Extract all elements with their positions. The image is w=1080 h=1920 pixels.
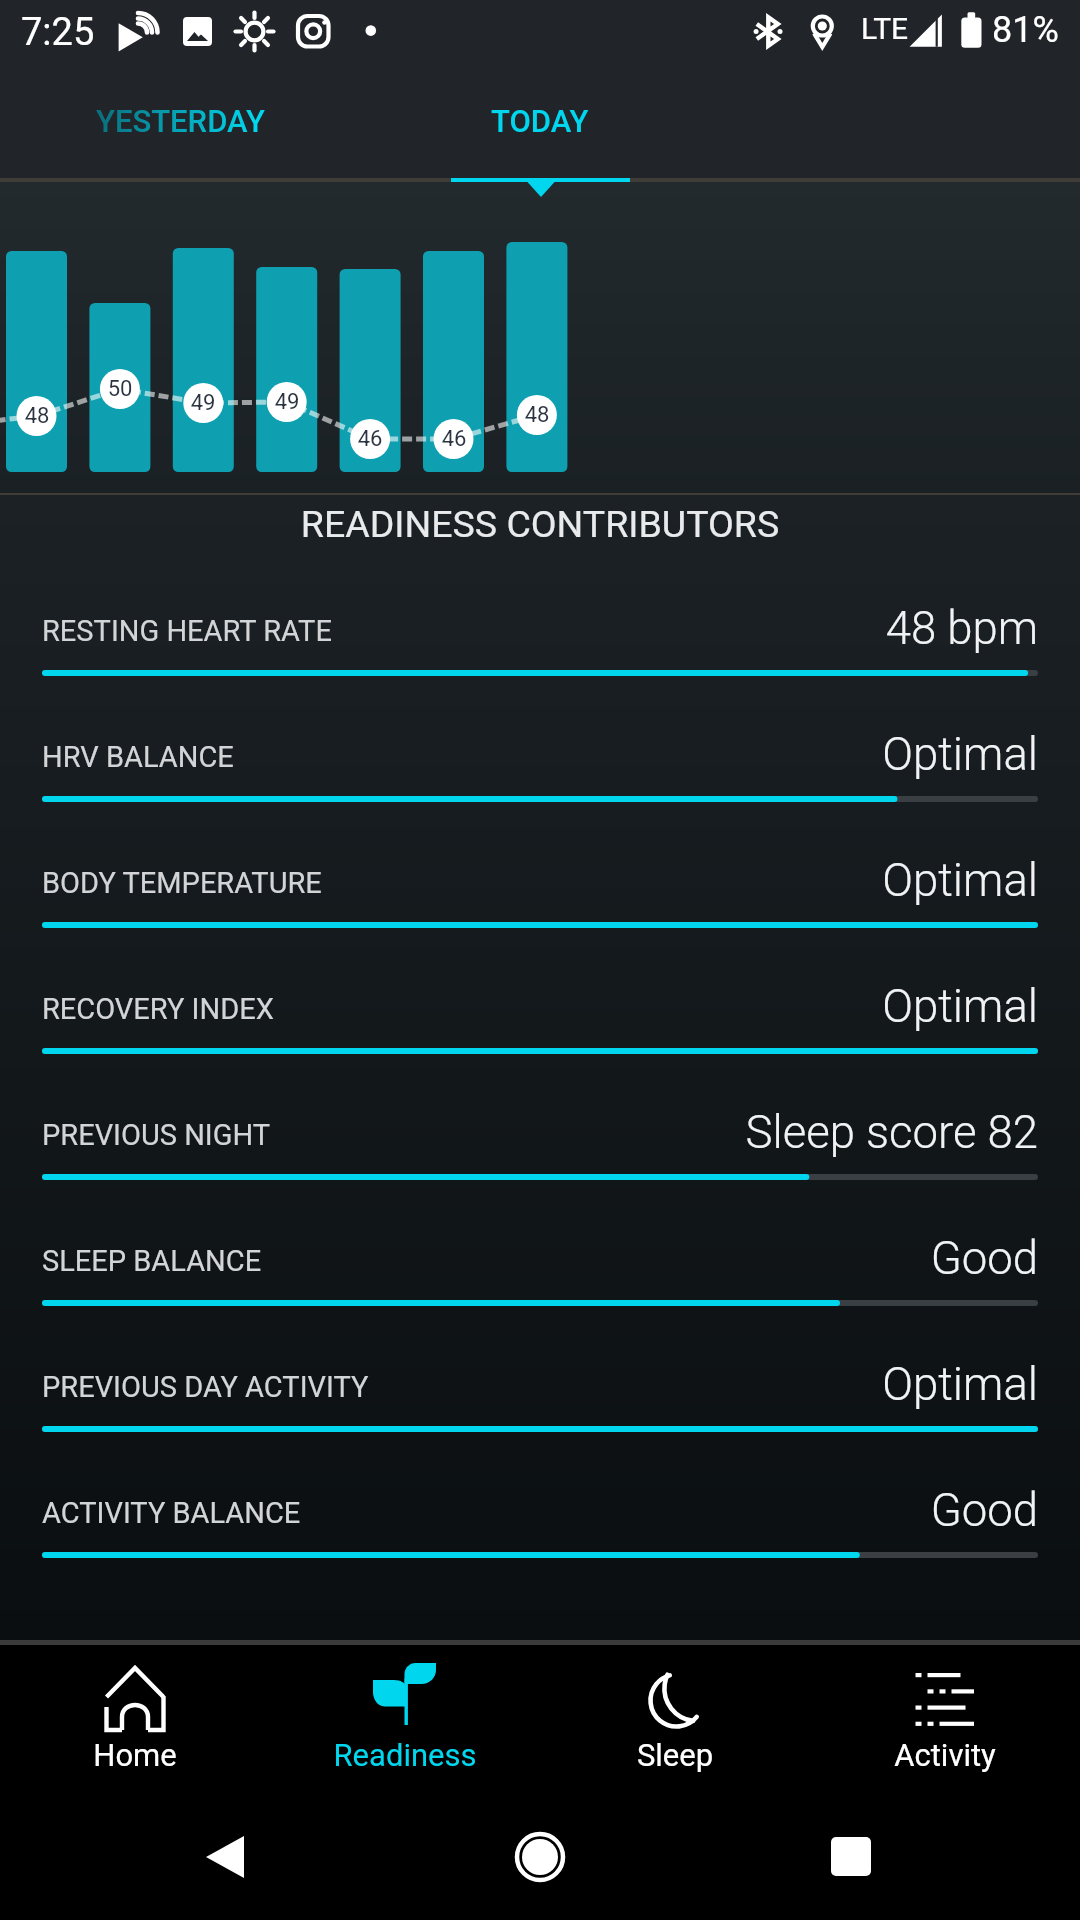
staticText: 7:25 [21, 10, 95, 55]
staticText: Readiness [270, 1737, 540, 1773]
button[interactable]: YESTERDAY [0, 72, 360, 178]
button[interactable]: PREVIOUS DAY ACTIVITY [0, 1348, 1080, 1474]
button[interactable]: RECOVERY INDEX [0, 970, 1080, 1096]
staticText: Optimal [0, 728, 1038, 781]
button[interactable]: Back [160, 1790, 290, 1920]
button[interactable]: Home [0, 1645, 270, 1790]
staticText: RECOVERY INDEX [42, 992, 274, 1026]
button[interactable]: Readiness [270, 1645, 540, 1790]
staticText: READINESS CONTRIBUTORS [0, 502, 1080, 546]
staticText: Good [0, 1232, 1038, 1285]
staticText: Optimal [0, 980, 1038, 1033]
staticText: 50 [100, 376, 140, 402]
staticText: HRV BALANCE [42, 740, 234, 774]
staticText: 46 [434, 426, 474, 452]
button[interactable]: HRV BALANCE [0, 718, 1080, 844]
staticText: 81% [992, 9, 1059, 51]
button[interactable]: Activity [810, 1645, 1080, 1790]
staticText: PREVIOUS DAY ACTIVITY [42, 1370, 369, 1404]
staticText: 49 [183, 390, 223, 416]
staticText: Activity [810, 1737, 1080, 1773]
staticText: YESTERDAY [96, 103, 265, 139]
button[interactable]: BODY TEMPERATURE [0, 844, 1080, 970]
staticText: Optimal [0, 854, 1038, 907]
staticText: LTE [861, 11, 909, 46]
staticText: Good [0, 1484, 1038, 1537]
button[interactable]: Home [475, 1790, 605, 1920]
staticText: 46 [350, 426, 390, 452]
staticText: Optimal [0, 1358, 1038, 1411]
staticText: ACTIVITY BALANCE [42, 1496, 301, 1530]
staticText: Sleep [540, 1737, 810, 1773]
button[interactable]: PREVIOUS NIGHT [0, 1096, 1080, 1222]
button[interactable]: SLEEP BALANCE [0, 1222, 1080, 1348]
staticText: Sleep score 82 [0, 1106, 1038, 1159]
button[interactable]: TODAY [360, 72, 720, 178]
staticText: TODAY [491, 103, 589, 139]
staticText: SLEEP BALANCE [42, 1244, 262, 1278]
staticText: PREVIOUS NIGHT [42, 1118, 271, 1152]
button[interactable]: Recents [786, 1790, 916, 1920]
staticText: BODY TEMPERATURE [42, 866, 322, 900]
button[interactable]: RESTING HEART RATE [0, 592, 1080, 718]
staticText: 48 [517, 402, 557, 428]
staticText: 48 [17, 403, 57, 429]
staticText: Home [0, 1737, 270, 1773]
button[interactable]: Sleep [540, 1645, 810, 1790]
button[interactable]: ACTIVITY BALANCE [0, 1474, 1080, 1600]
staticText: RESTING HEART RATE [42, 614, 332, 648]
staticText: 49 [267, 389, 307, 415]
staticText: 48 bpm [0, 602, 1038, 655]
